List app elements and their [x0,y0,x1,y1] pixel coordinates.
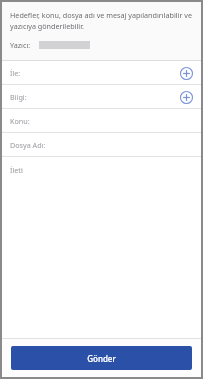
staticText: Hedefler, konu, dosya adı ve mesaj yapıl… [10,10,193,31]
staticText: Yazıcı: [10,40,31,50]
button[interactable]: Add recipient [178,89,194,105]
button[interactable]: İle: [2,61,201,84]
staticText: Bilgi: [10,92,27,102]
staticText: Konu: [10,116,30,126]
staticText: Dosya Adı: [10,140,46,150]
button[interactable]: Dosya Adı: [2,133,201,156]
staticText: İle: [10,68,21,78]
button[interactable]: Gönder [11,346,192,370]
staticText: İleti [10,165,23,175]
staticText: Gönder [87,353,116,364]
button[interactable]: Bilgi: [2,85,201,108]
button[interactable]: Add recipient [178,65,194,81]
button[interactable]: Konu: [2,109,201,132]
